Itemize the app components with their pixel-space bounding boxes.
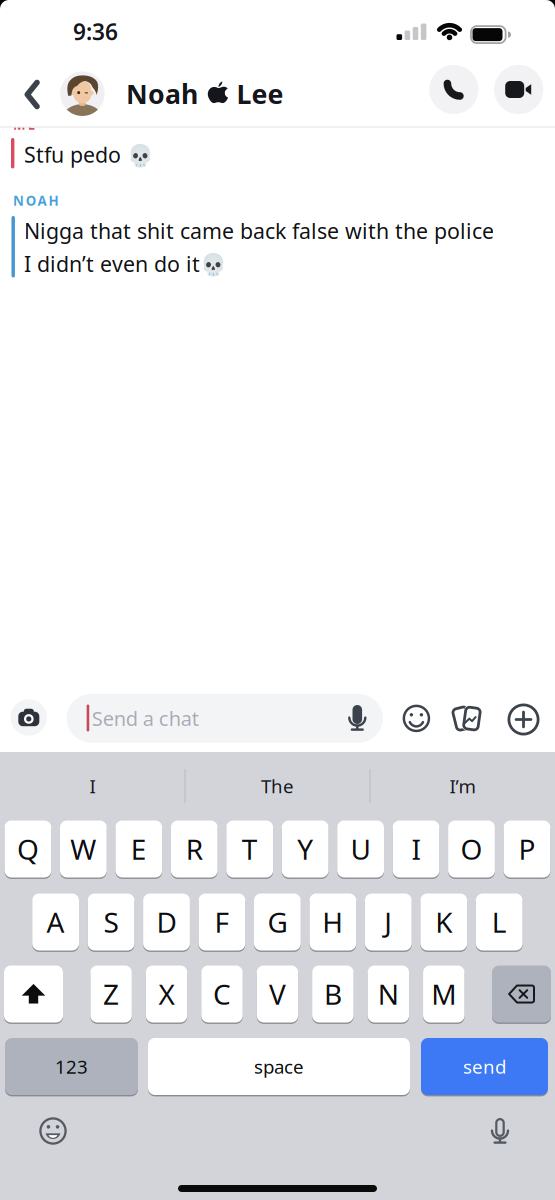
button[interactable]: Emoji keyboard <box>39 1117 67 1145</box>
button[interactable]: I <box>17 766 167 806</box>
staticText: ME <box>13 116 35 133</box>
button[interactable]: V <box>257 964 298 1023</box>
button[interactable]: H <box>309 892 356 951</box>
button[interactable]: Stickers <box>403 705 430 732</box>
button[interactable]: W <box>60 819 107 878</box>
staticText: The <box>261 774 294 798</box>
staticText: Q <box>17 830 39 868</box>
staticText: Noah <box>126 76 198 111</box>
button[interactable]: Y <box>282 819 329 878</box>
staticText: space <box>254 1054 304 1079</box>
staticText: U <box>351 830 371 868</box>
staticText: I didn’t even do it💀 <box>24 250 227 278</box>
button[interactable]: S <box>88 892 134 951</box>
staticText: Send a chat <box>92 705 199 732</box>
button[interactable]: E <box>115 819 162 878</box>
button[interactable]: Back <box>15 72 49 116</box>
button[interactable]: I’m <box>387 766 537 806</box>
button[interactable]: Memories <box>454 704 482 732</box>
button[interactable]: F <box>199 892 245 951</box>
staticText: F <box>214 903 229 941</box>
button[interactable]: send <box>421 1037 548 1096</box>
staticText: T <box>242 830 258 868</box>
staticText: N <box>378 975 399 1013</box>
staticText: Y <box>297 830 313 868</box>
staticText: G <box>267 903 287 941</box>
button[interactable]: Send a chat <box>67 694 383 743</box>
button[interactable]: Delete <box>492 964 551 1023</box>
button[interactable]: The <box>202 766 352 806</box>
staticText: S <box>104 903 119 941</box>
staticText: H <box>322 903 343 941</box>
staticText: W <box>70 830 96 868</box>
button[interactable]: Noah Lee profile <box>60 71 283 116</box>
button[interactable]: space <box>148 1037 410 1096</box>
staticText: V <box>269 975 286 1013</box>
staticText: 9:36 <box>73 16 118 46</box>
staticText: E <box>131 830 147 868</box>
button[interactable]: Dictation <box>492 1118 508 1144</box>
button[interactable]: Video call <box>494 65 543 114</box>
staticText: Lee <box>236 76 283 111</box>
button[interactable]: I <box>393 819 439 878</box>
staticText: I <box>412 830 421 868</box>
button[interactable]: B <box>312 964 354 1023</box>
button[interactable]: Camera <box>11 699 47 736</box>
staticText: X <box>159 975 175 1013</box>
button[interactable]: C <box>201 964 243 1023</box>
staticText: B <box>324 975 342 1013</box>
button[interactable]: N <box>368 964 409 1023</box>
staticText: K <box>435 903 452 941</box>
button[interactable]: O <box>448 819 495 878</box>
staticText: send <box>463 1054 506 1079</box>
button[interactable]: Q <box>4 819 51 878</box>
button[interactable]: Z <box>90 964 132 1023</box>
button[interactable]: J <box>365 892 412 951</box>
button[interactable]: G <box>254 892 301 951</box>
staticText: Z <box>103 975 119 1013</box>
button[interactable]: A <box>32 892 79 951</box>
button[interactable]: U <box>337 819 384 878</box>
button[interactable]: More <box>507 703 539 735</box>
staticText: M <box>431 975 456 1013</box>
button[interactable]: K <box>420 892 467 951</box>
staticText: 123 <box>55 1054 88 1079</box>
staticText: Stfu pedo 💀 <box>24 140 154 169</box>
button[interactable]: Shift <box>4 964 63 1023</box>
staticText: I’m <box>449 774 475 798</box>
button[interactable]: Voice message <box>349 705 365 731</box>
staticText: L <box>492 903 507 941</box>
staticText: O <box>460 830 482 868</box>
button[interactable]: L <box>476 892 523 951</box>
button[interactable]: P <box>504 819 550 878</box>
button[interactable]: X <box>146 964 187 1023</box>
staticText: P <box>518 830 535 868</box>
button[interactable]: Call <box>429 65 478 114</box>
staticText: NOAH <box>13 192 58 209</box>
staticText: A <box>47 903 65 941</box>
staticText: D <box>156 903 176 941</box>
button[interactable]: 123 <box>5 1037 138 1096</box>
button[interactable]: M <box>423 964 465 1023</box>
staticText: Nigga that shit came back false with the… <box>24 217 494 245</box>
button[interactable]: R <box>171 819 218 878</box>
staticText: I <box>89 774 95 798</box>
staticText: J <box>384 903 392 941</box>
button[interactable]: T <box>226 819 273 878</box>
staticText: R <box>186 830 203 868</box>
staticText: C <box>213 975 231 1013</box>
button[interactable]: D <box>143 892 190 951</box>
